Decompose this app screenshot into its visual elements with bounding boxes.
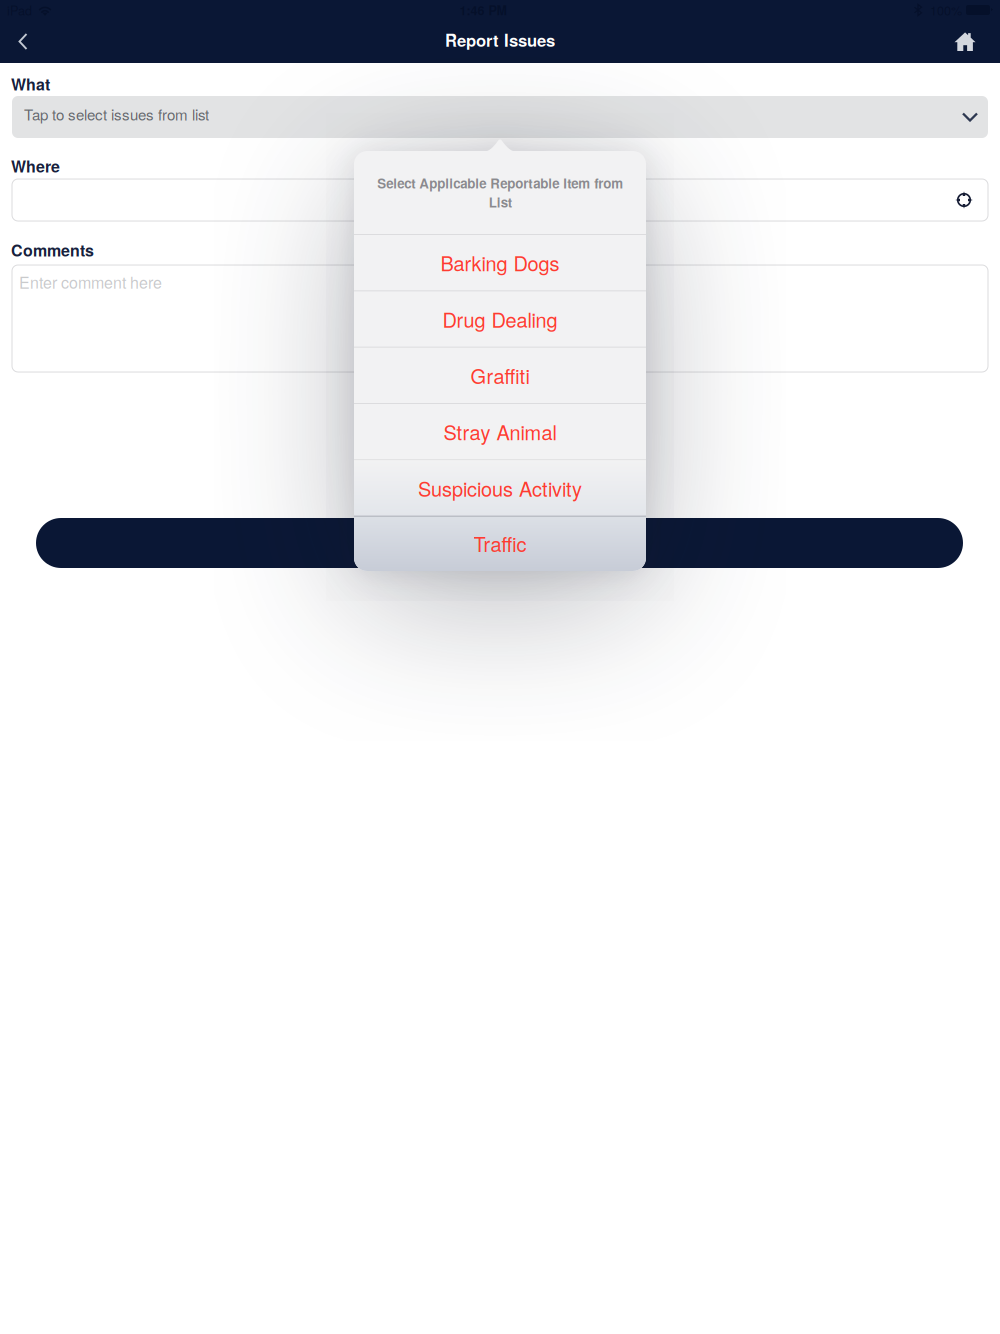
button[interactable]: Submit <box>36 518 963 568</box>
staticText: Enter comment here <box>19 270 162 293</box>
button[interactable]: Barking Dogs <box>354 235 646 290</box>
button[interactable]: Use current location <box>949 185 979 215</box>
staticText: iPad <box>7 1 32 19</box>
button[interactable]: Home <box>943 20 987 63</box>
staticText: Drug Dealing <box>442 305 557 333</box>
staticText: 1:46 PM <box>459 1 507 19</box>
button[interactable]: Graffiti <box>354 348 646 403</box>
button[interactable]: Back <box>1 20 45 63</box>
staticText: Traffic <box>473 529 526 558</box>
staticText: Tap to select issues from list <box>24 103 209 125</box>
staticText: Suspicious Activity <box>418 474 582 502</box>
staticText: Stray Animal <box>443 417 556 446</box>
staticText: Report Issues <box>445 28 555 52</box>
staticText: What <box>11 72 50 95</box>
staticText: Comments <box>11 238 94 261</box>
staticText: Select Applicable Reportable Item from L… <box>377 173 623 212</box>
button[interactable]: Tap to select issues from list <box>12 96 988 138</box>
staticText: Graffiti <box>470 361 529 390</box>
button[interactable]: Stray Animal <box>354 404 646 459</box>
button[interactable]: Traffic <box>354 516 646 571</box>
staticText: Barking Dogs <box>440 248 559 277</box>
button[interactable]: Suspicious Activity <box>354 460 646 516</box>
button[interactable]: Drug Dealing <box>354 291 646 347</box>
staticText: Where <box>11 154 60 177</box>
